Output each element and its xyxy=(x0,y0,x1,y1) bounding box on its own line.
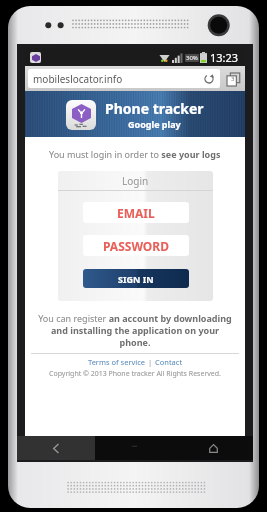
button[interactable]: Terms of service xyxy=(88,357,146,367)
staticText: You can register an account by downloadi… xyxy=(35,312,235,348)
staticText: Google play xyxy=(128,118,181,130)
staticText: Terms of service xyxy=(88,357,146,367)
button[interactable]: PASSWORD xyxy=(83,235,189,256)
staticText: EMAIL xyxy=(117,205,155,221)
staticText: 13:23 xyxy=(210,50,239,65)
staticText: Copyright © 2013 Phone tracker All Right… xyxy=(49,369,221,379)
button[interactable]: EMAIL xyxy=(83,202,189,223)
staticText: PASSWORD xyxy=(103,238,170,254)
button[interactable]: Tabs xyxy=(224,70,242,88)
staticText: Phone tracker xyxy=(105,99,204,118)
staticText: You must login in order to see your logs xyxy=(49,148,221,160)
button[interactable]: Phone tracker app icon xyxy=(66,100,96,130)
button[interactable]: Contact xyxy=(155,357,183,367)
button[interactable]: SIGN IN xyxy=(83,269,189,288)
button[interactable]: mobileslocator.info xyxy=(28,69,220,88)
staticText: SIGN IN xyxy=(118,273,154,285)
staticText: | xyxy=(146,357,155,367)
staticText: 3 xyxy=(231,75,235,83)
staticText: Login xyxy=(122,174,149,188)
staticText: 30% xyxy=(186,54,198,62)
staticText: Contact xyxy=(155,357,183,367)
button[interactable]: Reload xyxy=(202,72,215,85)
staticText: mobileslocator.info xyxy=(33,72,123,86)
button[interactable]: Home xyxy=(174,436,253,460)
button[interactable]: Back xyxy=(17,436,95,460)
